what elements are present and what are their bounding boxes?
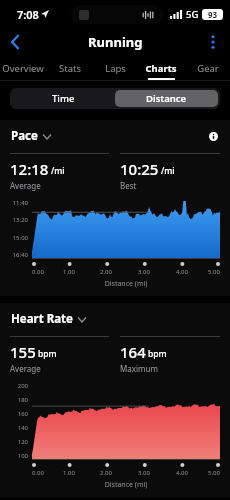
button[interactable]: Heart Rate [11, 311, 86, 327]
staticText: 5.00 [208, 268, 220, 276]
staticText: Running [88, 33, 143, 51]
staticText: bpm [38, 348, 57, 360]
staticText: Charts [145, 62, 177, 75]
staticText: 3.00 [138, 469, 150, 477]
staticText: 16:40 [12, 251, 28, 259]
staticText: 120 [17, 438, 28, 446]
staticText: 13:20 [12, 216, 28, 224]
staticText: 7:08 [17, 7, 39, 22]
button[interactable]: Laps [92, 55, 138, 80]
staticText: 4.00 [176, 469, 188, 477]
staticText: 140 [17, 424, 28, 432]
staticText: Maximum [120, 363, 158, 374]
staticText: Average [10, 180, 41, 191]
staticText: Overview [2, 62, 44, 75]
staticText: 180 [17, 396, 28, 404]
staticText: Pace [11, 128, 38, 144]
staticText: 10:25 [120, 159, 159, 179]
button[interactable]: Charts [138, 55, 184, 80]
button[interactable]: Distance [115, 90, 218, 107]
button[interactable]: More options [201, 30, 225, 54]
staticText: bpm [148, 348, 167, 360]
staticText: 1.00 [63, 268, 75, 276]
button[interactable]: Info [206, 129, 221, 144]
staticText: Distance (mi) [32, 279, 220, 289]
staticText: Stats [59, 62, 81, 75]
staticText: 15:00 [12, 234, 28, 242]
staticText: 100 [17, 452, 28, 460]
staticText: 93 [208, 9, 218, 20]
staticText: 200 [17, 382, 28, 390]
staticText: /mi [51, 165, 65, 177]
staticText: 0.00 [32, 469, 44, 477]
staticText: 1.00 [63, 469, 75, 477]
staticText: Best [120, 180, 137, 191]
staticText: 12:18 [10, 159, 49, 179]
staticText: Distance (mi) [32, 480, 220, 490]
button[interactable]: Stats [46, 55, 92, 80]
staticText: Distance [146, 92, 187, 105]
staticText: Gear [197, 62, 219, 75]
staticText: 2.00 [100, 469, 112, 477]
button[interactable]: Time [12, 90, 115, 107]
staticText: /mi [161, 165, 175, 177]
staticText: 160 [17, 410, 28, 418]
button[interactable]: Gear [184, 55, 230, 80]
button[interactable]: Pace [11, 128, 51, 144]
staticText: Time [52, 92, 75, 105]
staticText: 5G [186, 8, 199, 21]
staticText: Heart Rate [11, 311, 73, 327]
staticText: 2.00 [100, 268, 112, 276]
staticText: Average [10, 363, 41, 374]
button[interactable]: Back [3, 30, 27, 54]
staticText: 155 [10, 342, 36, 362]
staticText: 4.00 [176, 268, 188, 276]
staticText: 164 [120, 342, 146, 362]
staticText: 5.00 [208, 469, 220, 477]
staticText: 3.00 [138, 268, 150, 276]
staticText: 0.00 [32, 268, 44, 276]
staticText: 11:40 [12, 199, 28, 207]
staticText: Laps [105, 62, 126, 75]
button[interactable]: Overview [0, 55, 46, 80]
